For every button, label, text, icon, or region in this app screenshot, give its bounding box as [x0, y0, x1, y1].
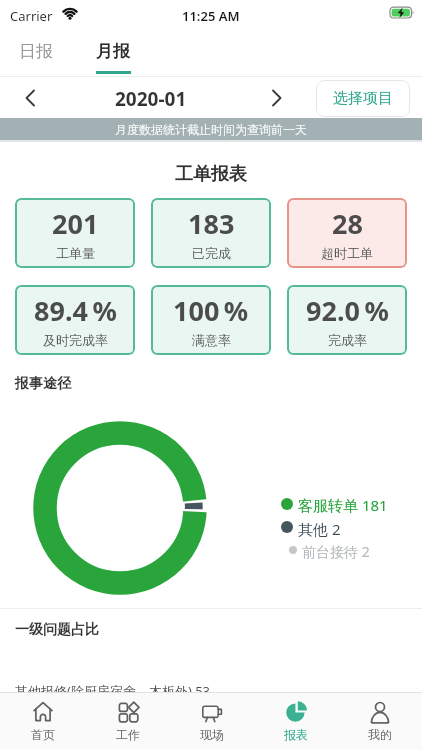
staticText: 89.4 % [34, 292, 117, 329]
staticText: 2020-01 [115, 86, 187, 110]
staticText: 其他 2 [298, 519, 341, 539]
staticText: 工作 [116, 727, 140, 742]
staticText: 报事途径 [15, 375, 71, 393]
staticText: 11:25 AM [182, 7, 240, 23]
staticText: 月报 [96, 41, 130, 62]
staticText: 选择项目 [333, 89, 393, 108]
button[interactable]: 201 [15, 198, 135, 268]
button[interactable]: 工作 [85, 693, 170, 750]
staticText: 日报 [19, 41, 53, 62]
button[interactable]: 92.0 % [287, 285, 407, 355]
button[interactable] [24, 89, 36, 107]
staticText: 月度数据统计截止时间为查询前一天 [115, 122, 307, 137]
staticText: 超时工单 [321, 245, 373, 261]
staticText: 现场 [200, 727, 224, 742]
staticText: 工单报表 [175, 163, 247, 186]
staticText: 前台接待 2 [302, 542, 370, 561]
button[interactable]: 100 % [151, 285, 271, 355]
staticText: 满意率 [192, 332, 231, 348]
staticText: 客服转单 181 [298, 495, 388, 515]
staticText: 28 [332, 205, 363, 242]
button[interactable]: 现场 [170, 693, 254, 750]
staticText: 201 [52, 205, 99, 242]
staticText: 183 [188, 205, 235, 242]
staticText: 首页 [31, 727, 55, 742]
staticText: 其他报修(除厨房宿舍，木板外) 53 [15, 682, 211, 700]
button[interactable]: 月报 [95, 38, 131, 64]
staticText: 一级问题占比 [15, 621, 99, 639]
staticText: 及时完成率 [43, 332, 108, 348]
staticText: 已完成 [192, 245, 231, 261]
staticText: 100 % [173, 292, 249, 329]
staticText: 工单量 [56, 245, 95, 261]
staticText: 92.0 % [306, 292, 389, 329]
button[interactable]: 选择项目 [316, 80, 410, 117]
button[interactable]: 183 [151, 198, 271, 268]
button[interactable]: 89.4 % [15, 285, 135, 355]
button[interactable]: 28 [287, 198, 407, 268]
button[interactable]: 报表 [254, 693, 338, 750]
button[interactable]: 我的 [338, 693, 422, 750]
staticText: 完成率 [328, 332, 367, 348]
staticText: 我的 [368, 727, 392, 742]
button[interactable]: 首页 [0, 693, 85, 750]
staticText: 报表 [284, 727, 308, 742]
staticText: Carrier [10, 7, 53, 25]
button[interactable]: 日报 [18, 38, 54, 64]
button[interactable] [271, 89, 283, 107]
